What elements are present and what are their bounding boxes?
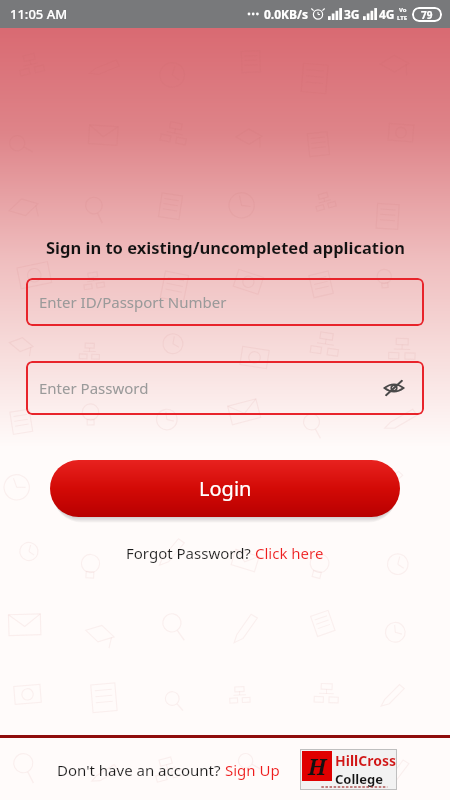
button[interactable]: Show password	[377, 371, 411, 405]
button[interactable]: Forgot Password?	[118, 539, 332, 567]
staticText: Sign in to existing/uncompleted applicat…	[46, 236, 405, 258]
staticText: 79	[421, 8, 433, 22]
staticText: College	[335, 770, 383, 788]
staticText: Login	[199, 475, 252, 502]
staticText: Enter Password	[39, 378, 149, 398]
staticText: Forgot Password?	[126, 543, 255, 563]
staticText: LTE	[397, 14, 408, 22]
button[interactable]: HillCross College	[300, 749, 397, 790]
staticText: Click here	[255, 543, 324, 563]
staticText: Vo	[399, 6, 407, 14]
staticText: HillCross	[335, 751, 397, 770]
staticText: H	[308, 751, 327, 781]
staticText: 3G	[344, 6, 360, 22]
staticText: Enter ID/Passport Number	[39, 292, 227, 312]
button[interactable]: Login	[50, 460, 400, 517]
button[interactable]: Enter Password	[26, 361, 424, 415]
staticText: Sign Up	[225, 760, 280, 780]
staticText: 4G	[379, 6, 395, 22]
staticText: 11:05 AM	[10, 5, 68, 23]
staticText: 0.0KB/s	[264, 6, 309, 22]
staticText: Don't have an account?	[57, 760, 225, 780]
button[interactable]: Don't have an account?	[53, 756, 284, 784]
button[interactable]: Enter ID/Passport Number	[26, 278, 424, 326]
